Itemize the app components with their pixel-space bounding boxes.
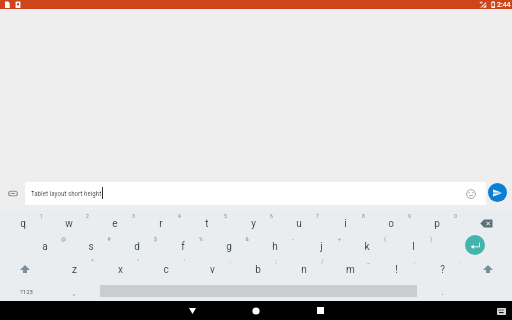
button[interactable]: i bbox=[322, 211, 368, 237]
staticText: h bbox=[272, 241, 278, 253]
button[interactable]: Switch keyboard bbox=[494, 306, 508, 316]
button[interactable]: e bbox=[92, 211, 138, 237]
staticText: : bbox=[229, 258, 231, 264]
button[interactable]: v bbox=[189, 257, 235, 283]
staticText: r bbox=[159, 218, 163, 230]
button[interactable]: z bbox=[51, 257, 97, 283]
staticText: 2:44 bbox=[497, 1, 511, 9]
button[interactable]: o bbox=[368, 211, 414, 237]
button[interactable]: j bbox=[298, 234, 344, 260]
staticText: 6 bbox=[270, 213, 273, 219]
button[interactable]: Back bbox=[176, 301, 208, 320]
staticText: % bbox=[199, 236, 203, 242]
staticText: ) bbox=[430, 236, 432, 242]
button[interactable]: l bbox=[390, 234, 436, 260]
button[interactable]: Backspace bbox=[463, 210, 509, 236]
staticText: e bbox=[112, 218, 118, 230]
staticText: 9 bbox=[408, 213, 411, 219]
staticText: a bbox=[42, 241, 48, 253]
staticText: & bbox=[245, 236, 249, 242]
button[interactable]: Recent apps bbox=[304, 301, 336, 320]
staticText: ? bbox=[440, 264, 445, 276]
staticText: q bbox=[20, 218, 26, 230]
button[interactable]: b bbox=[235, 257, 281, 283]
staticText: 5 bbox=[224, 213, 227, 219]
staticText: g bbox=[226, 241, 232, 253]
staticText: 0 bbox=[454, 213, 457, 219]
staticText: 3 bbox=[132, 213, 135, 219]
button[interactable]: Insert emoji bbox=[464, 187, 478, 201]
button[interactable]: t bbox=[184, 211, 230, 237]
button[interactable]: ! bbox=[373, 257, 419, 283]
staticText: * bbox=[91, 258, 94, 264]
staticText: i bbox=[344, 218, 347, 230]
button[interactable]: s bbox=[68, 234, 114, 260]
button[interactable]: p bbox=[414, 211, 460, 237]
button[interactable]: q bbox=[0, 211, 46, 237]
button[interactable]: n bbox=[281, 257, 327, 283]
staticText: @ bbox=[61, 236, 66, 242]
staticText: y bbox=[251, 218, 256, 230]
staticText: 8 bbox=[362, 213, 365, 219]
staticText: # bbox=[107, 236, 111, 242]
button[interactable]: w bbox=[46, 211, 92, 237]
button[interactable]: g bbox=[206, 234, 252, 260]
staticText: . bbox=[441, 288, 444, 297]
staticText: w bbox=[65, 218, 73, 230]
button[interactable]: , bbox=[51, 279, 97, 305]
button[interactable]: x bbox=[97, 257, 143, 283]
staticText: ?123 bbox=[20, 288, 33, 295]
staticText: u bbox=[296, 218, 302, 230]
staticText: ' bbox=[184, 258, 185, 264]
staticText: o bbox=[388, 218, 394, 230]
staticText: p bbox=[434, 218, 440, 230]
button[interactable]: . bbox=[419, 279, 465, 305]
staticText: / bbox=[321, 258, 324, 264]
staticText: f bbox=[181, 241, 185, 253]
staticText: + bbox=[338, 236, 341, 242]
staticText: 1 bbox=[40, 213, 43, 219]
staticText: d bbox=[134, 241, 140, 253]
staticText: _ bbox=[367, 258, 370, 264]
button[interactable]: c bbox=[143, 257, 189, 283]
button[interactable]: Tablet layout short height bbox=[25, 182, 486, 205]
staticText: n bbox=[301, 264, 307, 276]
staticText: k bbox=[364, 241, 370, 253]
button[interactable]: r bbox=[138, 211, 184, 237]
button[interactable]: k bbox=[344, 234, 390, 260]
staticText: v bbox=[210, 264, 215, 276]
staticText: j bbox=[320, 241, 323, 253]
staticText: , bbox=[73, 288, 75, 297]
staticText: ( bbox=[384, 236, 386, 242]
button[interactable]: h bbox=[252, 234, 298, 260]
staticText: " bbox=[137, 258, 139, 264]
button[interactable]: d bbox=[114, 234, 160, 260]
staticText: Tablet layout short height bbox=[31, 190, 102, 198]
button[interactable]: m bbox=[327, 257, 373, 283]
staticText: l bbox=[412, 241, 415, 253]
button[interactable]: a bbox=[22, 234, 68, 260]
button[interactable]: f bbox=[160, 234, 206, 260]
staticText: . bbox=[459, 258, 461, 264]
button[interactable]: ? bbox=[419, 257, 465, 283]
staticText: , bbox=[414, 258, 415, 264]
button[interactable]: y bbox=[230, 211, 276, 237]
staticText: c bbox=[163, 264, 169, 276]
staticText: s bbox=[88, 241, 94, 253]
button[interactable]: Attach file bbox=[5, 185, 21, 201]
staticText: ; bbox=[275, 258, 277, 264]
staticText: m bbox=[346, 264, 355, 276]
button[interactable]: Enter bbox=[465, 235, 485, 255]
button[interactable]: Send message bbox=[488, 183, 507, 202]
button[interactable]: ?123 bbox=[3, 278, 49, 304]
staticText: $ bbox=[154, 236, 157, 242]
staticText: 7 bbox=[316, 213, 319, 219]
staticText: - bbox=[292, 236, 294, 242]
button[interactable]: Shift bbox=[465, 256, 511, 282]
button[interactable]: Home bbox=[240, 301, 272, 320]
button[interactable]: Shift bbox=[2, 256, 48, 282]
button[interactable]: u bbox=[276, 211, 322, 237]
staticText: x bbox=[118, 264, 123, 276]
staticText: z bbox=[72, 264, 77, 276]
